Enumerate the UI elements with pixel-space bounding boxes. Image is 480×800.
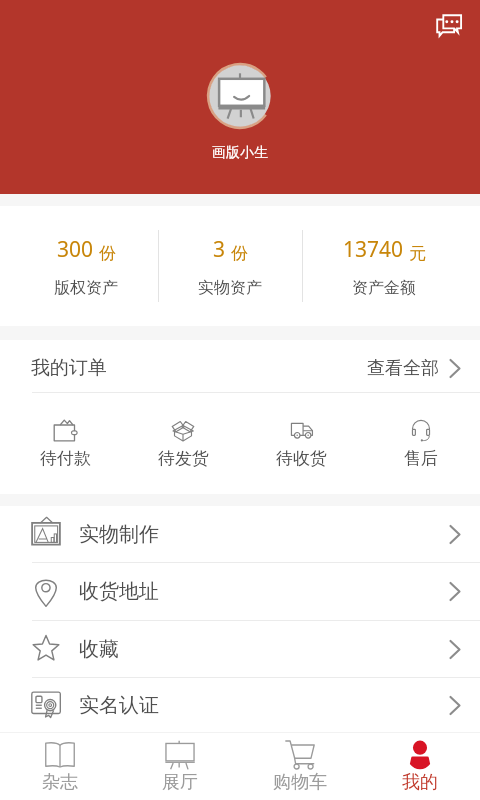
button[interactable]: 待付款 (6, 393, 124, 494)
staticText: 购物车 (273, 771, 327, 794)
button[interactable]: 杂志 (0, 733, 120, 800)
button[interactable]: 收货地址 (0, 563, 480, 620)
staticText: 收藏 (79, 637, 119, 662)
staticText: 画版小生 (212, 144, 268, 162)
staticText: 3 (213, 235, 226, 264)
button[interactable]: 我的 (360, 733, 480, 800)
button[interactable]: 收藏 (0, 621, 480, 677)
button[interactable]: Messages (427, 5, 471, 49)
staticText: 待付款 (40, 448, 91, 469)
staticText: 杂志 (42, 771, 78, 794)
staticText: 资产金额 (352, 278, 416, 298)
staticText: 实名认证 (79, 693, 159, 718)
button[interactable]: 13740 (288, 206, 480, 326)
staticText: 查看全部 (367, 357, 439, 380)
staticText: 待发货 (158, 448, 209, 469)
button[interactable]: 售后 (361, 393, 480, 494)
staticText: 元 (409, 243, 426, 264)
staticText: 份 (99, 243, 116, 264)
button[interactable]: 我的订单 (0, 340, 480, 392)
staticText: 实物制作 (79, 522, 159, 547)
staticText: 我的 (402, 771, 438, 794)
staticText: 份 (231, 243, 248, 264)
button[interactable]: 购物车 (240, 733, 360, 800)
button[interactable]: 3 (172, 206, 288, 326)
staticText: 版权资产 (54, 278, 118, 298)
button[interactable]: 300 (0, 206, 172, 326)
button[interactable]: 实物制作 (0, 506, 480, 562)
button[interactable]: 待发货 (124, 393, 242, 494)
staticText: 13740 (343, 235, 404, 264)
button[interactable]: 待收货 (242, 393, 361, 494)
staticText: 售后 (404, 448, 438, 469)
staticText: 实物资产 (198, 278, 262, 298)
button[interactable]: 实名认证 (0, 678, 480, 732)
staticText: 待收货 (276, 448, 327, 469)
staticText: 展厅 (162, 771, 198, 794)
staticText: 300 (57, 235, 94, 264)
staticText: 我的订单 (31, 356, 107, 380)
staticText: 收货地址 (79, 579, 159, 604)
button[interactable]: 展厅 (120, 733, 240, 800)
